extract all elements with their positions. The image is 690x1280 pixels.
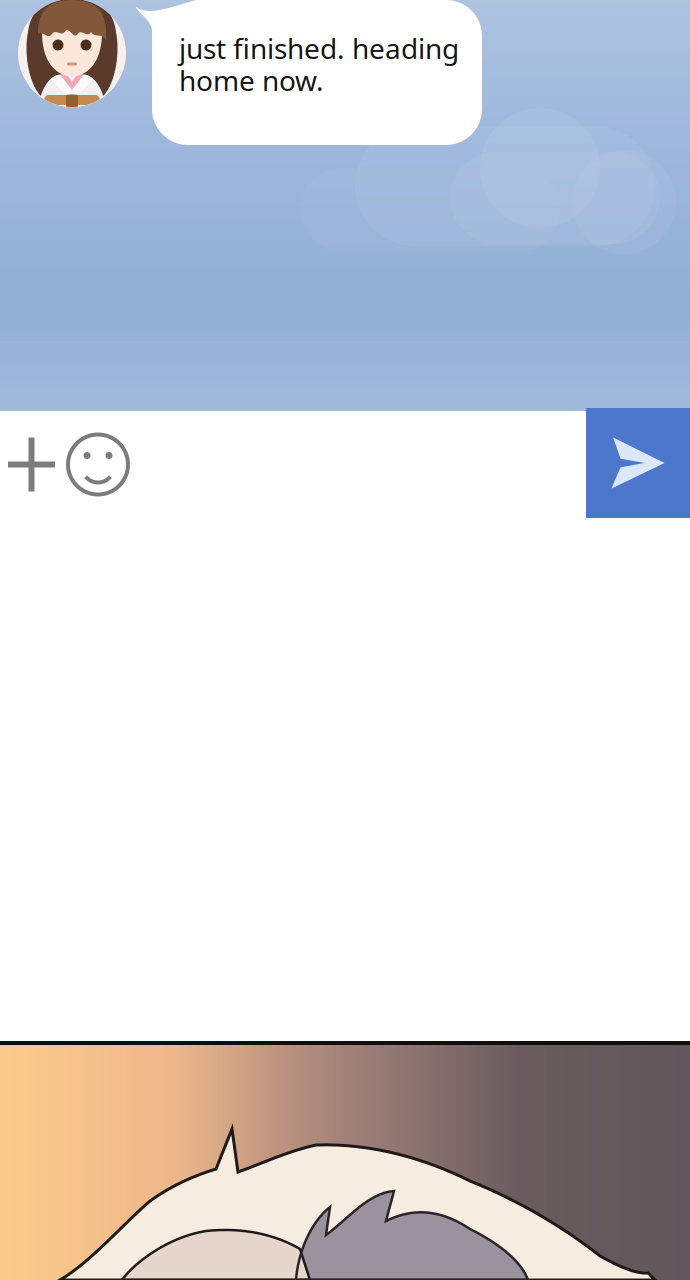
button[interactable]: Add attachment	[0, 411, 63, 518]
button[interactable]: Emoji	[63, 411, 133, 518]
staticText: home now.	[179, 61, 324, 99]
staticText: just finished. heading	[179, 29, 459, 67]
button[interactable]: Send	[586, 408, 690, 518]
